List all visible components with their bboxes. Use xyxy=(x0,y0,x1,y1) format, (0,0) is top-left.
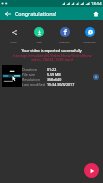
staticText: 5.59 MB xyxy=(47,72,61,77)
button[interactable]: Video preview xyxy=(2,65,22,87)
staticText: Facebook xyxy=(59,40,70,43)
staticText: Save xyxy=(36,40,42,43)
staticText: Resolution xyxy=(22,77,40,82)
button[interactable]: Home xyxy=(89,7,103,20)
staticText: 18:54 xyxy=(91,1,102,7)
button[interactable]: Save xyxy=(26,20,51,43)
button[interactable]: Play xyxy=(84,163,99,178)
staticText: 01:22 xyxy=(47,67,57,72)
button[interactable]: Messenger xyxy=(77,20,102,43)
staticText: Congratulations! xyxy=(15,10,57,17)
button[interactable]: Details xyxy=(92,73,100,81)
button[interactable]: Back xyxy=(0,7,15,20)
staticText: Share xyxy=(10,40,17,43)
button[interactable]: Share xyxy=(1,20,26,43)
button[interactable]: Facebook xyxy=(52,20,77,43)
staticText: /storage/emulated/0/VideoShow/VideoShow xyxy=(12,53,92,58)
staticText: video_78234_1685.mp4 xyxy=(31,57,73,62)
staticText: File size xyxy=(22,72,36,77)
staticText: Last modified xyxy=(22,82,45,87)
staticText: 368x640 xyxy=(47,77,62,82)
staticText: Duration xyxy=(22,67,37,72)
staticText: Messenger xyxy=(83,40,96,43)
staticText: Your video is exported successfully xyxy=(21,48,82,53)
staticText: 15:34 30/3/2017 xyxy=(47,82,75,87)
